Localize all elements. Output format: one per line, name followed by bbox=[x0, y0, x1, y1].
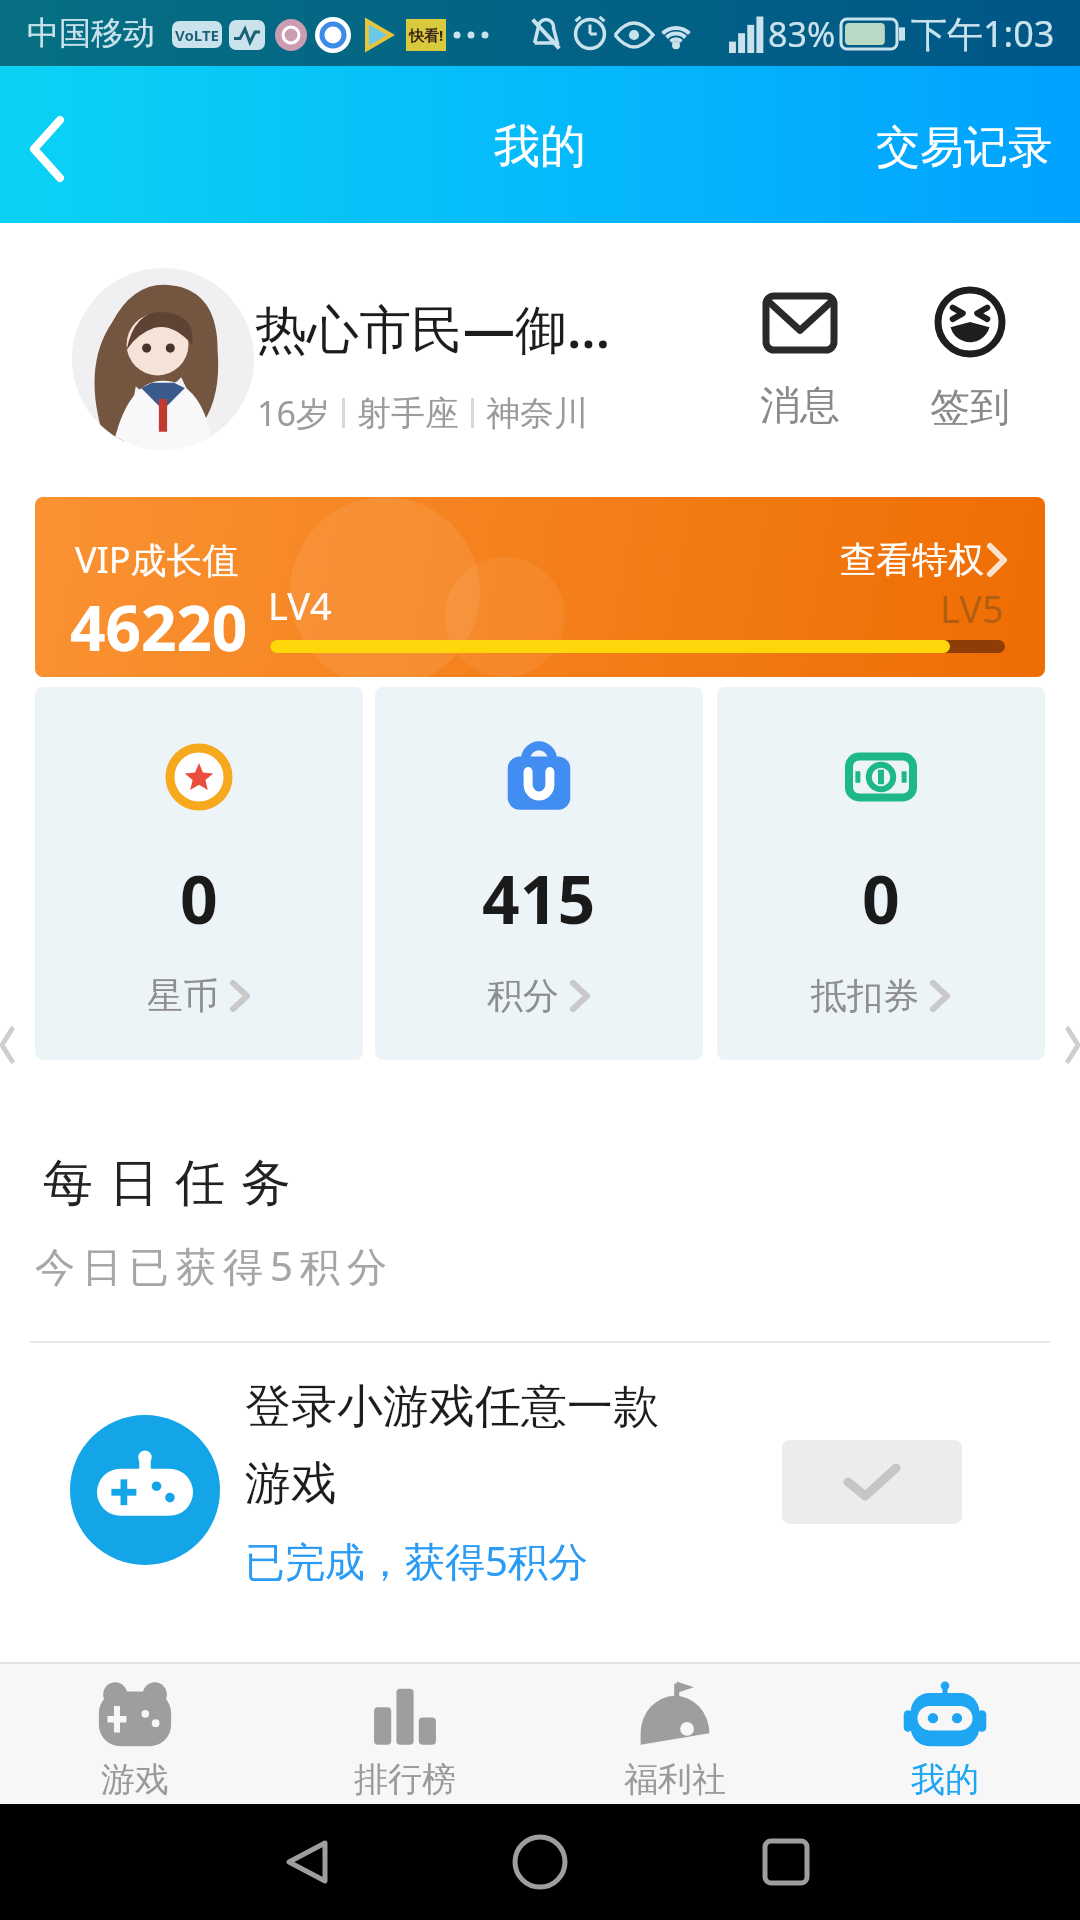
staticText: 已完成，获得5积分 bbox=[245, 1533, 588, 1588]
staticText: 抵扣券 bbox=[811, 973, 919, 1018]
staticText: 我的 bbox=[911, 1758, 979, 1801]
staticText: LV5 bbox=[940, 582, 1004, 634]
staticText: 83% bbox=[768, 11, 836, 57]
staticText: 射手座 bbox=[357, 392, 459, 435]
button[interactable]: 消息 bbox=[752, 292, 848, 430]
button[interactable] bbox=[762, 1838, 810, 1886]
button[interactable]: 签到 bbox=[922, 286, 1018, 432]
staticText: 46220 bbox=[70, 585, 248, 669]
staticText: 签到 bbox=[930, 382, 1010, 432]
staticText: LV4 bbox=[268, 579, 332, 631]
button[interactable]: 0 bbox=[717, 687, 1045, 1060]
staticText: 消息 bbox=[760, 380, 840, 430]
staticText: 热心市民—御... bbox=[255, 292, 611, 363]
button[interactable] bbox=[72, 268, 254, 450]
button[interactable]: 415 bbox=[375, 687, 703, 1060]
button[interactable]: 交易记录 bbox=[876, 120, 1052, 175]
staticText: 每日任务 bbox=[35, 1152, 299, 1215]
staticText: 积分 bbox=[487, 973, 559, 1018]
staticText: 下午1:03 bbox=[911, 9, 1055, 58]
staticText: VIP成长值 bbox=[75, 535, 239, 584]
button[interactable]: 我的 bbox=[810, 1662, 1080, 1804]
staticText: 今日已获得5积分 bbox=[35, 1238, 394, 1293]
staticText: 415 bbox=[482, 853, 596, 943]
staticText: 福利社 bbox=[624, 1758, 726, 1801]
staticText: VoLTE bbox=[175, 25, 219, 45]
button[interactable]: 0 bbox=[35, 687, 363, 1060]
staticText: 快看! bbox=[409, 25, 444, 45]
staticText: 游戏 bbox=[101, 1758, 169, 1801]
staticText: 排行榜 bbox=[354, 1758, 456, 1801]
button[interactable] bbox=[512, 1834, 568, 1890]
button[interactable]: 排行榜 bbox=[270, 1662, 540, 1804]
button[interactable]: 游戏 bbox=[0, 1662, 270, 1804]
button[interactable] bbox=[285, 1839, 329, 1885]
button[interactable] bbox=[28, 116, 64, 182]
staticText: 游戏 bbox=[245, 1455, 337, 1513]
staticText: 我的 bbox=[494, 118, 586, 176]
staticText: 中国移动 bbox=[27, 13, 155, 53]
button[interactable]: 福利社 bbox=[540, 1662, 810, 1804]
staticText: 登录小游戏任意一款 bbox=[245, 1378, 659, 1436]
button[interactable] bbox=[782, 1440, 962, 1524]
staticText: 0 bbox=[180, 853, 218, 943]
staticText: 0 bbox=[862, 853, 900, 943]
staticText: 神奈川 bbox=[486, 392, 588, 435]
staticText: 查看特权 bbox=[840, 537, 984, 582]
button[interactable]: VIP成长值 bbox=[35, 497, 1045, 677]
staticText: 16岁 bbox=[257, 390, 330, 436]
button[interactable] bbox=[70, 1415, 220, 1565]
staticText: 星币 bbox=[147, 973, 219, 1018]
